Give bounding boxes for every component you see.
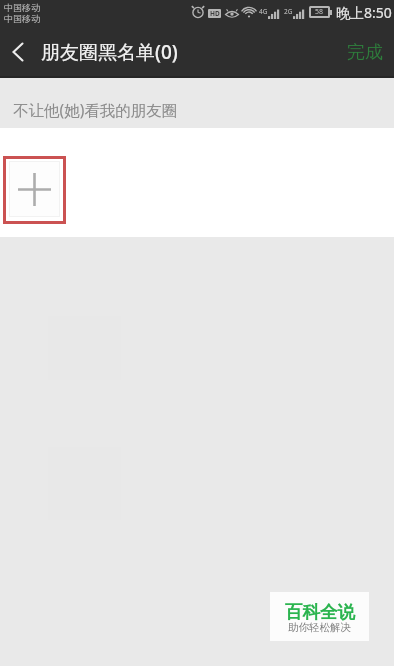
staticText: 完成 — [347, 41, 383, 64]
staticText: 4G — [259, 7, 268, 16]
staticText: 晚上8:50 — [336, 3, 392, 22]
button[interactable]: Back — [0, 26, 36, 78]
staticText: 朋友圈黑名单(0) — [41, 39, 178, 65]
staticText: HD — [210, 9, 220, 18]
staticText: 助你轻松解决 — [288, 621, 351, 634]
staticText: 中国移动 — [4, 2, 40, 13]
staticText: 2G — [284, 7, 293, 16]
staticText: 百科全说 — [285, 601, 355, 623]
staticText: 不让他(她)看我的朋友圈 — [13, 99, 178, 120]
button[interactable]: Add member — [9, 161, 60, 217]
staticText: 58 — [315, 7, 324, 17]
staticText: 中国移动 — [4, 13, 40, 24]
button[interactable]: 完成 — [331, 26, 394, 78]
